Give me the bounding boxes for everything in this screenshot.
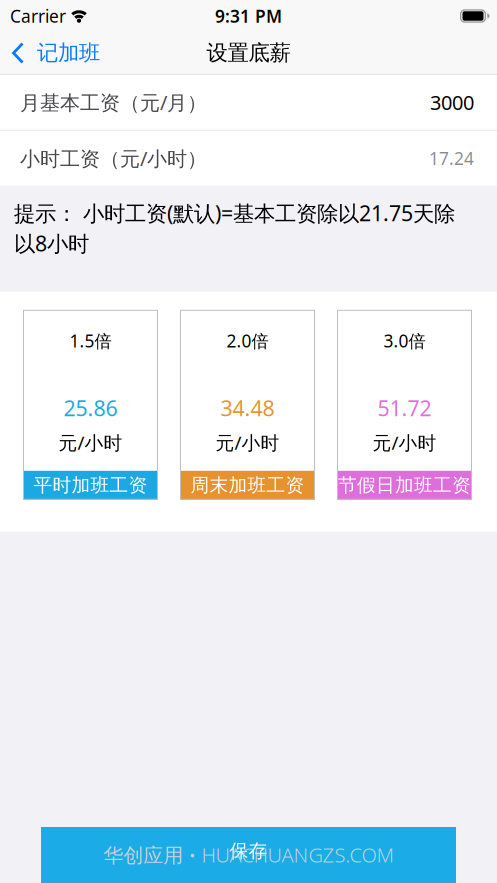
staticText: 设置底薪	[206, 40, 290, 66]
staticText: 月基本工资（元/月）	[20, 89, 207, 116]
staticText: 小时工资（元/小时）	[20, 145, 207, 172]
staticText: 25.86	[63, 394, 117, 422]
staticText: 1.5倍	[69, 329, 111, 352]
staticText: 51.72	[377, 394, 431, 422]
staticText: 华创应用 • HUACHUANGZS.COM	[103, 841, 393, 868]
staticText: 周末加班工资	[190, 474, 304, 497]
staticText: 提示： 小时工资(默认)=基本工资除以21.75天除	[14, 199, 455, 227]
staticText: 元/小时	[58, 430, 122, 455]
staticText: 2.0倍	[226, 329, 268, 352]
staticText: 节假日加班工资	[338, 474, 471, 497]
button[interactable]: 月基本工资（元/月）	[0, 75, 497, 130]
staticText: 元/小时	[215, 430, 279, 455]
staticText: 平时加班工资	[33, 474, 147, 497]
staticText: 17.24	[429, 147, 474, 170]
button[interactable]: 保存	[41, 827, 456, 883]
staticText: 元/小时	[372, 430, 436, 455]
button[interactable]: 小时工资（元/小时）	[0, 131, 497, 186]
staticText: 3000	[430, 89, 474, 116]
staticText: 以8小时	[14, 229, 89, 257]
staticText: 保存	[229, 839, 267, 862]
staticText: 3.0倍	[383, 329, 425, 352]
staticText: Carrier	[10, 4, 66, 27]
staticText: 记加班	[37, 40, 100, 66]
staticText: 34.48	[220, 394, 274, 422]
button[interactable]: Back	[12, 40, 100, 66]
staticText: 9:31 PM	[215, 4, 282, 27]
